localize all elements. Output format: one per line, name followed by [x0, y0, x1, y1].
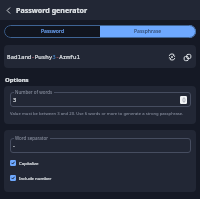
staticText: Options — [5, 76, 29, 84]
button[interactable]: Copy password — [180, 50, 194, 64]
staticText: Badland-Pushy3-Armful — [7, 53, 165, 61]
button[interactable] — [10, 138, 191, 153]
button[interactable]: Capitalize — [10, 158, 191, 168]
button[interactable]: Passphrase — [100, 25, 196, 38]
button[interactable]: Password — [4, 25, 100, 38]
button[interactable] — [10, 92, 191, 107]
staticText: Capitalize — [19, 160, 39, 166]
staticText: Value must be between 3 and 20. Use 6 wo… — [10, 111, 184, 117]
staticText: Word separator — [15, 135, 49, 141]
staticText: Password generator — [16, 5, 88, 15]
staticText: Include number — [19, 175, 52, 181]
button[interactable]: Adjust number of words — [180, 96, 187, 104]
button[interactable]: Regenerate password — [165, 50, 179, 64]
staticText: - — [13, 142, 15, 150]
staticText: Passphrase — [134, 28, 162, 35]
staticText: Number of words — [15, 89, 53, 95]
button[interactable]: Back — [0, 0, 16, 20]
button[interactable]: Include number — [10, 173, 191, 183]
staticText: 3 — [13, 96, 17, 104]
staticText: Password — [41, 28, 64, 35]
